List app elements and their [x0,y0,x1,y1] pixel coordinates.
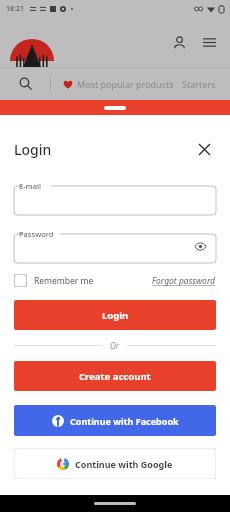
button[interactable]: Password [14,229,216,263]
staticText: Continue with Facebook [70,415,179,427]
button[interactable]: Continue with Google [14,448,216,479]
button[interactable]: Remember me [14,274,94,287]
staticText: Login [14,140,52,159]
button[interactable]: Search [0,67,50,100]
button[interactable]: Starters [182,78,216,90]
button[interactable]: Create account [14,361,216,391]
staticText: 18:21 [6,4,24,14]
staticText: Create account [79,370,151,383]
button[interactable]: Continue with Facebook [14,405,216,436]
button[interactable]: E-mail [14,181,216,215]
staticText: Most popular products [77,78,174,90]
staticText: Or [110,340,119,351]
staticText: Password [19,229,54,239]
button[interactable]: Close [192,137,216,161]
button[interactable]: Forgot password [152,275,216,287]
button[interactable]: Most popular products [63,78,174,90]
staticText: Remember me [34,275,94,287]
staticText: Continue with Google [75,458,173,470]
staticText: E-mail [19,181,42,191]
staticText: Forgot password [152,275,216,287]
staticText: Login [102,309,129,322]
button[interactable]: Login [14,300,216,330]
button[interactable]: Account [168,31,190,53]
staticText: Starters [182,78,216,90]
button[interactable]: Show password [192,238,208,254]
button[interactable]: Menu [198,31,220,53]
